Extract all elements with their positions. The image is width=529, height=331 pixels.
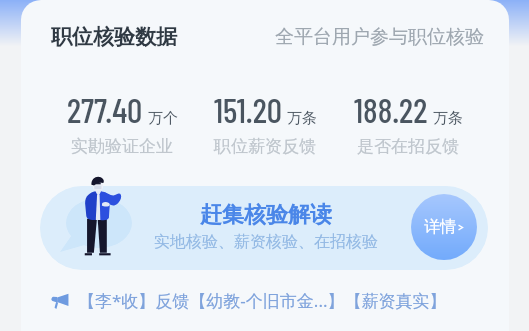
- staticText: 万条: [433, 109, 463, 128]
- staticText: 万条: [287, 109, 317, 128]
- staticText: 万个: [148, 109, 178, 128]
- staticText: 职位核验数据: [51, 24, 177, 50]
- staticText: 详情: [424, 217, 456, 237]
- staticText: 【李*收】反馈【幼教-个旧市金...】【薪资真实】: [78, 289, 447, 312]
- staticText: 全平台用户参与职位核验: [275, 25, 484, 49]
- staticText: 188.22: [354, 89, 428, 130]
- staticText: 赶集核验解读: [200, 201, 332, 229]
- button[interactable]: 详情: [411, 194, 477, 260]
- staticText: 实勘验证企业: [71, 136, 173, 157]
- other: 公告: [51, 292, 69, 310]
- staticText: 277.40: [67, 89, 143, 130]
- staticText: 是否在招反馈: [357, 136, 459, 157]
- staticText: 实地核验、薪资核验、在招核验: [154, 232, 378, 252]
- staticText: 151.20: [214, 89, 282, 130]
- button[interactable]: 赶集核验解读: [40, 186, 488, 270]
- staticText: 职位薪资反馈: [214, 136, 316, 157]
